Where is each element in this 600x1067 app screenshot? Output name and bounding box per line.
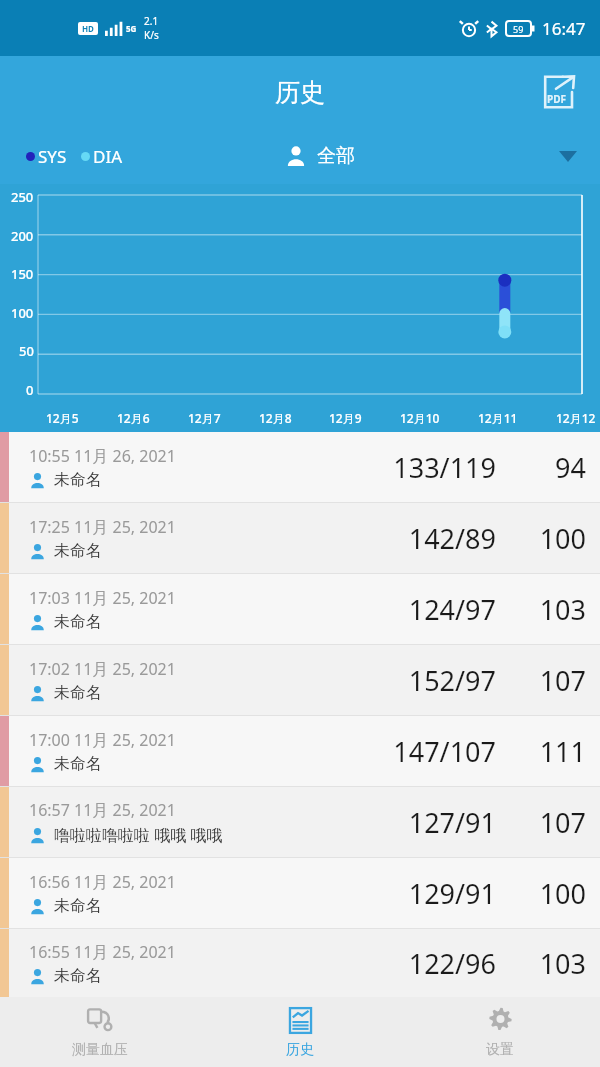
staticText: 16:47 [542, 17, 586, 40]
staticText: 94 [555, 449, 586, 486]
staticText: 未命名 [54, 896, 102, 916]
button[interactable]: 历史 [200, 997, 400, 1067]
staticText: SYS [38, 145, 67, 168]
staticText: 测量血压 [72, 1041, 128, 1059]
staticText: 12月10 [400, 410, 440, 426]
button[interactable]: SYS [26, 145, 67, 168]
staticText: 250 [11, 188, 34, 206]
button[interactable]: 设置 [400, 997, 600, 1067]
button[interactable]: 17:00 11月 25, 2021 [0, 716, 600, 786]
staticText: 111 [539, 733, 586, 770]
staticText: 17:00 11月 25, 2021 [29, 729, 176, 751]
staticText: 16:55 11月 25, 2021 [29, 941, 176, 963]
staticText: 未命名 [54, 683, 102, 703]
staticText: 17:02 11月 25, 2021 [29, 658, 176, 680]
staticText: 200 [11, 227, 34, 245]
staticText: 12月9 [329, 410, 362, 426]
staticText: 17:25 11月 25, 2021 [29, 516, 176, 538]
staticText: 设置 [486, 1041, 514, 1059]
staticText: 122/96 [408, 945, 496, 982]
button[interactable]: 16:55 11月 25, 2021 [0, 929, 600, 997]
staticText: 12月7 [188, 410, 221, 426]
staticText: 142/89 [408, 520, 496, 557]
staticText: 历史 [286, 1041, 314, 1059]
button[interactable]: 全部 [285, 144, 355, 168]
staticText: 16:57 11月 25, 2021 [29, 799, 176, 821]
staticText: 12月5 [46, 410, 79, 426]
staticText: 历史 [275, 77, 325, 108]
staticText: 16:56 11月 25, 2021 [29, 871, 176, 893]
staticText: 150 [11, 265, 34, 283]
staticText: DIA [93, 145, 123, 168]
staticText: 全部 [317, 144, 355, 168]
staticText: 100 [539, 875, 586, 912]
staticText: PDF [547, 92, 567, 106]
staticText: 17:03 11月 25, 2021 [29, 587, 176, 609]
staticText: 2.1 [144, 14, 159, 28]
button[interactable]: DIA [81, 145, 123, 168]
staticText: 147/107 [393, 733, 496, 770]
button[interactable]: 10:55 11月 26, 2021 [0, 432, 600, 502]
button[interactable]: 17:02 11月 25, 2021 [0, 645, 600, 715]
staticText: 未命名 [54, 966, 102, 986]
staticText: 100 [539, 520, 586, 557]
staticText: 103 [539, 945, 586, 982]
staticText: 100 [11, 304, 34, 322]
button[interactable]: 测量血压 [0, 997, 200, 1067]
staticText: 未命名 [54, 754, 102, 774]
staticText: 107 [539, 662, 586, 699]
button[interactable]: 16:57 11月 25, 2021 [0, 787, 600, 857]
staticText: HD [82, 23, 94, 34]
staticText: 未命名 [54, 470, 102, 490]
staticText: 0 [26, 381, 34, 399]
button[interactable]: 17:25 11月 25, 2021 [0, 503, 600, 573]
staticText: 107 [539, 804, 586, 841]
staticText: 12月6 [117, 410, 150, 426]
staticText: 12月11 [478, 410, 518, 426]
staticText: 噜啦啦噜啦啦 哦哦 哦哦 [54, 824, 223, 846]
staticText: 127/91 [408, 804, 496, 841]
button[interactable]: Select user [550, 138, 586, 174]
staticText: 10:55 11月 26, 2021 [29, 445, 176, 467]
staticText: 12月8 [259, 410, 292, 426]
staticText: 152/97 [408, 662, 496, 699]
staticText: 129/91 [408, 875, 496, 912]
staticText: 未命名 [54, 612, 102, 632]
staticText: 12月12 [556, 410, 596, 426]
button[interactable]: 17:03 11月 25, 2021 [0, 574, 600, 644]
staticText: 124/97 [408, 591, 496, 628]
staticText: K/s [144, 28, 159, 42]
staticText: 5G [126, 23, 137, 34]
staticText: 未命名 [54, 541, 102, 561]
staticText: 59 [513, 23, 524, 35]
staticText: 103 [539, 591, 586, 628]
button[interactable]: 16:56 11月 25, 2021 [0, 858, 600, 928]
button[interactable]: Export PDF [532, 66, 584, 118]
staticText: 133/119 [393, 449, 496, 486]
staticText: 50 [19, 342, 34, 360]
